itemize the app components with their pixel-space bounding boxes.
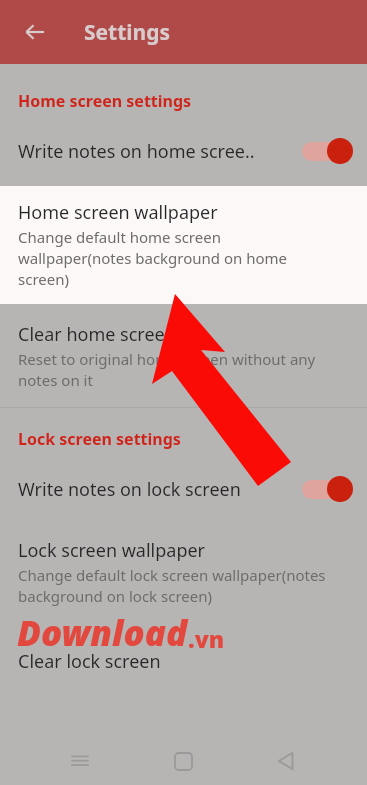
button[interactable]: Home bbox=[161, 739, 205, 783]
button[interactable]: Clear home screen bbox=[0, 310, 367, 403]
button[interactable]: Write notes on lock screen bbox=[0, 462, 367, 516]
staticText: Download bbox=[17, 609, 188, 657]
button[interactable]: Back bbox=[14, 11, 56, 53]
button[interactable]: Recent apps bbox=[58, 739, 102, 783]
staticText: .vn bbox=[188, 623, 225, 654]
staticText: Write notes on home scree.. bbox=[18, 139, 255, 164]
staticText: Home screen settings bbox=[18, 90, 192, 112]
staticText: Lock screen settings bbox=[18, 428, 181, 450]
staticText: Settings bbox=[84, 18, 171, 47]
staticText: Lock screen wallpaper bbox=[18, 538, 206, 563]
button[interactable]: Home screen wallpaper bbox=[0, 186, 367, 304]
staticText: Clear lock screen bbox=[18, 649, 161, 674]
staticText: Home screen wallpaper bbox=[18, 200, 218, 225]
button[interactable]: Back bbox=[264, 739, 308, 783]
staticText: Change default home screen wallpaper(not… bbox=[18, 227, 329, 290]
staticText: Reset to original home screen without an… bbox=[18, 349, 329, 391]
staticText: Clear home screen bbox=[18, 322, 176, 347]
button[interactable]: Lock screen wallpaper bbox=[0, 526, 367, 619]
staticText: Write notes on lock screen bbox=[18, 477, 241, 502]
staticText: Change default lock screen wallpaper(not… bbox=[18, 565, 329, 607]
button[interactable]: Write notes on home scree.. bbox=[0, 124, 367, 178]
button[interactable]: Clear lock screen bbox=[0, 637, 367, 686]
